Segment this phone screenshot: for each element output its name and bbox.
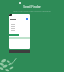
button[interactable] [9, 14, 30, 49]
staticText: Seed Finder [23, 5, 41, 9]
staticText: Sign in to keep your garden growing [13, 10, 51, 13]
button[interactable]: Menu [9, 14, 12, 16]
